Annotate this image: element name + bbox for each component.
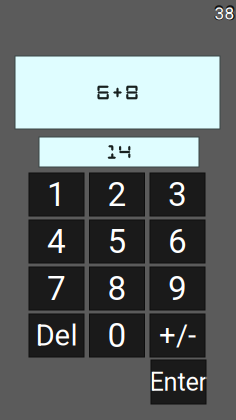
button[interactable]: 2: [89, 173, 144, 216]
staticText: 1: [47, 175, 66, 214]
button[interactable]: Enter: [151, 360, 206, 404]
button[interactable]: 9: [150, 267, 205, 310]
button[interactable]: 0: [89, 314, 144, 357]
staticText: 8: [107, 269, 126, 308]
staticText: 7: [47, 269, 66, 308]
button[interactable]: 4: [29, 220, 84, 263]
button[interactable]: 8: [89, 267, 144, 310]
staticText: 38: [213, 2, 235, 25]
staticText: Enter: [149, 367, 207, 397]
button[interactable]: 3: [150, 173, 205, 216]
staticText: 4: [47, 222, 66, 261]
staticText: 9: [168, 269, 187, 308]
staticText: 0: [107, 316, 126, 355]
button[interactable]: 5: [89, 220, 144, 263]
staticText: Del: [35, 318, 77, 353]
staticText: 6: [168, 222, 187, 261]
button[interactable]: 1: [29, 173, 84, 216]
button[interactable]: Del: [29, 314, 84, 357]
staticText: 3: [168, 175, 187, 214]
staticText: 5: [107, 222, 126, 261]
staticText: +/-: [159, 318, 196, 353]
button[interactable]: 6: [150, 220, 205, 263]
staticText: 38: [214, 3, 234, 24]
staticText: 2: [107, 175, 126, 214]
button[interactable]: 7: [29, 267, 84, 310]
button[interactable]: +/-: [150, 314, 205, 357]
